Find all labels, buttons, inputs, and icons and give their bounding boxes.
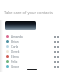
button[interactable]: Video call bbox=[56, 60, 59, 63]
staticText: Grace bbox=[11, 65, 20, 69]
staticText: Elena bbox=[11, 55, 19, 59]
button[interactable]: Message bbox=[53, 35, 56, 38]
staticText: Felix bbox=[11, 60, 18, 64]
button[interactable]: Message bbox=[53, 40, 56, 43]
button[interactable]: Grace bbox=[0, 64, 64, 69]
button[interactable]: Video call bbox=[56, 65, 59, 68]
button[interactable]: Video call bbox=[56, 50, 59, 53]
staticText: Take care of your contacts bbox=[4, 10, 53, 15]
staticText: Brian bbox=[11, 40, 19, 44]
button[interactable]: Derek bbox=[0, 49, 64, 54]
button[interactable]: Video call bbox=[56, 55, 59, 58]
button[interactable]: Message bbox=[53, 45, 56, 48]
button[interactable]: Felix bbox=[0, 59, 64, 64]
button[interactable]: Elena bbox=[0, 54, 64, 59]
button[interactable]: Carla bbox=[0, 44, 64, 49]
button[interactable] bbox=[5, 21, 36, 30]
staticText: Derek bbox=[11, 50, 20, 54]
staticText: Carla bbox=[11, 45, 19, 49]
staticText: Amanda bbox=[11, 35, 23, 39]
button[interactable]: Brian bbox=[0, 39, 64, 44]
button[interactable]: Video call bbox=[56, 40, 59, 43]
button[interactable]: Message bbox=[53, 55, 56, 58]
button[interactable]: Amanda bbox=[0, 34, 64, 39]
button[interactable]: Message bbox=[53, 60, 56, 63]
button[interactable]: Video call bbox=[56, 45, 59, 48]
button[interactable]: Video call bbox=[56, 35, 59, 38]
button[interactable]: Message bbox=[53, 65, 56, 68]
button[interactable]: Message bbox=[53, 50, 56, 53]
